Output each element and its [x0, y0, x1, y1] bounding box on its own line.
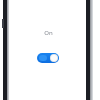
button[interactable]: Toggle, on [37, 53, 59, 63]
staticText: On [44, 29, 53, 37]
button[interactable]: On [33, 29, 63, 37]
